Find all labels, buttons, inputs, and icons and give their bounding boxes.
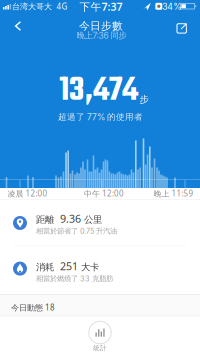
button[interactable]: 消耗 — [0, 246, 200, 294]
staticText: 13,474 — [59, 65, 138, 117]
staticText: 下午7:37 — [79, 0, 122, 14]
staticText: 相當於燃燒了 33 克脂肪 — [36, 274, 113, 283]
staticText: 凌晨 12:00 — [7, 188, 47, 199]
button[interactable]: 距離 — [0, 200, 200, 246]
staticText: 統計 — [93, 344, 107, 352]
staticText: 距離 — [36, 214, 60, 225]
staticText: 今日動態 18 — [11, 302, 55, 313]
staticText: 相當於節省了 0.75 升汽油 — [36, 226, 117, 236]
staticText: 晚上7:36 同步 — [76, 30, 126, 41]
staticText: 251 — [60, 259, 78, 273]
staticText: 中午 12:00 — [84, 188, 124, 199]
staticText: 消耗 — [36, 261, 60, 273]
staticText: 步 — [139, 94, 148, 105]
staticText: 公里 — [81, 214, 102, 225]
staticText: 9.36 — [60, 212, 81, 226]
button[interactable]: 統計 — [78, 315, 122, 353]
staticText: 34% — [162, 1, 182, 12]
staticText: 今日步數 — [79, 19, 123, 32]
staticText: 4G — [56, 1, 67, 12]
button[interactable]: Back — [10, 17, 26, 35]
button[interactable]: Share — [174, 20, 190, 36]
staticText: 晚上 11:59 — [153, 188, 193, 199]
staticText: 超過了 77% 的使用者 — [58, 112, 143, 122]
staticText: 大卡 — [78, 261, 99, 273]
staticText: 台湾大哥大 — [12, 2, 52, 11]
